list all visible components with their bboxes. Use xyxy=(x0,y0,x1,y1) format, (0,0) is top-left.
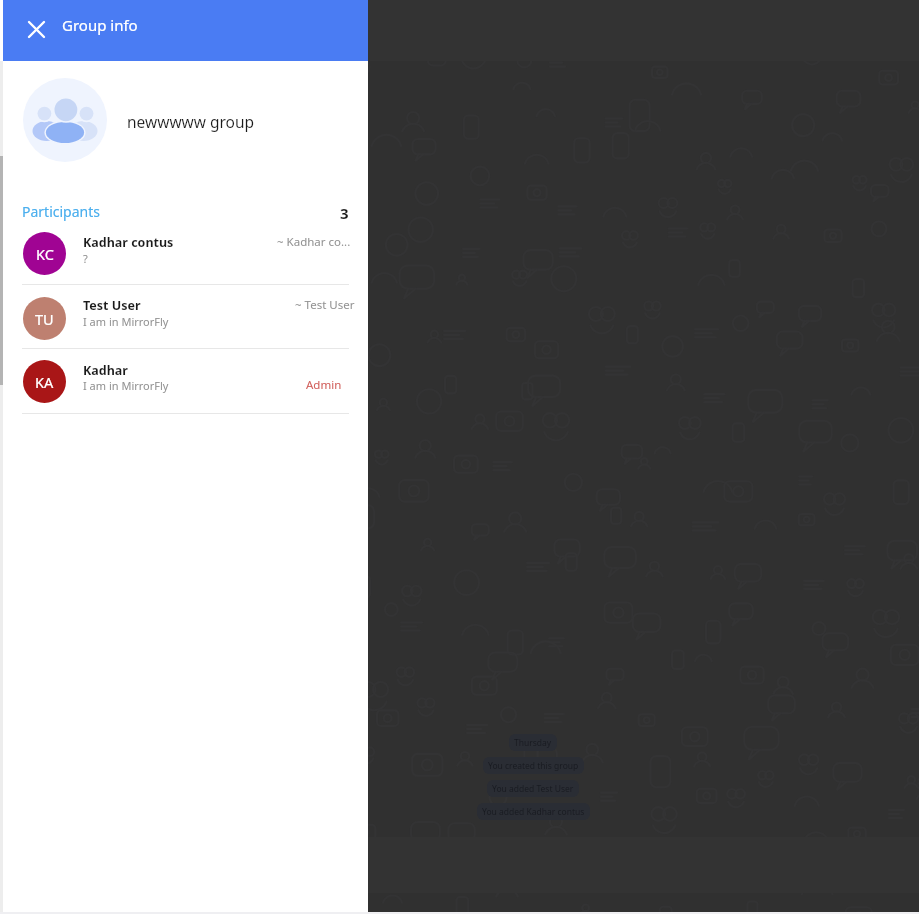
staticText: ~ Test User xyxy=(295,297,355,313)
staticText: Kadhar xyxy=(83,362,128,379)
staticText: TU xyxy=(35,309,54,329)
staticText: Group info xyxy=(62,15,138,35)
staticText: Kadhar contus xyxy=(83,234,174,251)
staticText: You added Test User xyxy=(492,783,574,795)
staticText: ? xyxy=(83,251,88,266)
staticText: Participants xyxy=(22,202,100,221)
staticText: Admin xyxy=(306,377,342,393)
staticText: 3 xyxy=(340,203,349,223)
staticText: ~ Kadhar co... xyxy=(277,234,351,250)
staticText: Test User xyxy=(83,297,141,314)
staticText: You added Kadhar contus xyxy=(482,806,585,818)
staticText: newwwww group xyxy=(127,111,255,132)
staticText: You created this group xyxy=(488,760,579,772)
staticText: Thursday xyxy=(514,737,552,749)
staticText: I am in MirrorFly xyxy=(83,314,169,329)
button[interactable]: KC xyxy=(0,220,368,285)
button[interactable]: KA xyxy=(0,349,368,414)
staticText: KC xyxy=(36,244,54,264)
button[interactable]: TU xyxy=(0,285,368,349)
button[interactable]: Close xyxy=(25,18,47,40)
staticText: KA xyxy=(35,372,54,392)
staticText: I am in MirrorFly xyxy=(83,378,169,393)
